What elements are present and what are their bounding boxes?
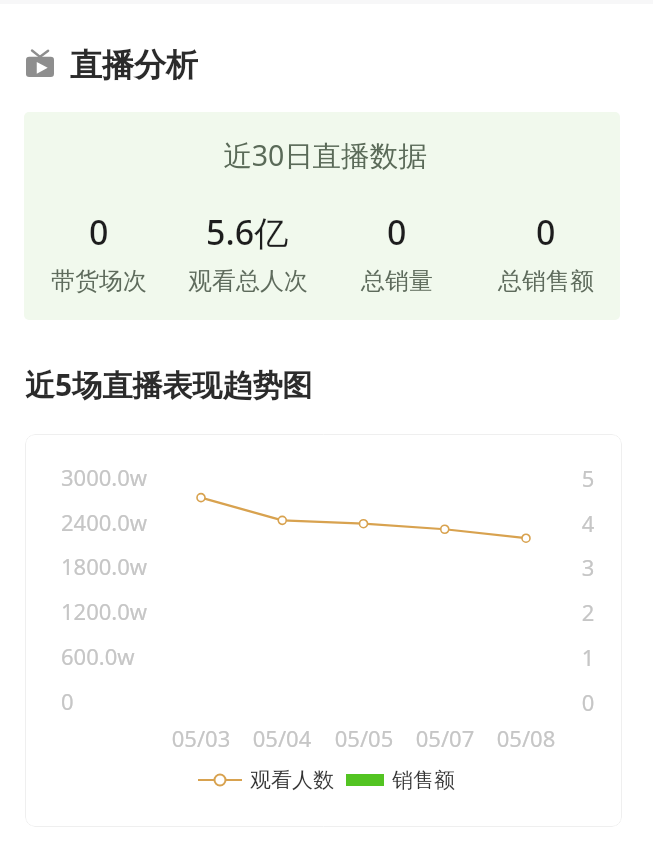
- staticText: 近30日直播数据: [27, 136, 620, 175]
- staticText: 总销售额: [498, 266, 594, 296]
- other: 直播分析: [26, 49, 54, 77]
- button[interactable]: 5.6亿: [173, 209, 322, 320]
- staticText: 销售额: [392, 767, 455, 793]
- staticText: 带货场次: [51, 266, 147, 296]
- staticText: 05/07: [405, 723, 485, 753]
- button[interactable]: 观看人数: [198, 767, 334, 793]
- button[interactable]: 近5场直播表现趋势图: [25, 434, 622, 827]
- staticText: 2400.0w: [61, 507, 148, 537]
- staticText: 05/08: [486, 723, 566, 753]
- staticText: 600.0w: [61, 641, 135, 671]
- staticText: 4: [573, 508, 603, 538]
- button[interactable]: 0: [471, 209, 620, 320]
- staticText: 0: [387, 209, 407, 255]
- staticText: 1800.0w: [61, 551, 148, 581]
- staticText: 直播分析: [70, 45, 198, 81]
- staticText: 05/05: [324, 723, 404, 753]
- staticText: 1: [573, 642, 603, 672]
- staticText: 3000.0w: [61, 462, 148, 492]
- button[interactable]: 0: [24, 209, 173, 320]
- staticText: 05/04: [242, 723, 322, 753]
- staticText: 观看总人次: [188, 266, 308, 296]
- staticText: 05/03: [161, 723, 241, 753]
- staticText: 0: [89, 209, 109, 255]
- staticText: 0: [536, 209, 556, 255]
- button[interactable]: 直播分析: [26, 45, 198, 81]
- staticText: 2: [573, 597, 603, 627]
- staticText: 0: [61, 686, 74, 716]
- staticText: 总销量: [361, 266, 433, 296]
- staticText: 5: [573, 463, 603, 493]
- staticText: 5.6亿: [206, 209, 289, 255]
- button[interactable]: 0: [322, 209, 471, 320]
- staticText: 3: [573, 552, 603, 582]
- button[interactable]: 销售额: [346, 767, 455, 793]
- staticText: 近5场直播表现趋势图: [25, 364, 313, 405]
- staticText: 0: [573, 687, 603, 717]
- staticText: 观看人数: [250, 767, 334, 793]
- staticText: 1200.0w: [61, 596, 148, 626]
